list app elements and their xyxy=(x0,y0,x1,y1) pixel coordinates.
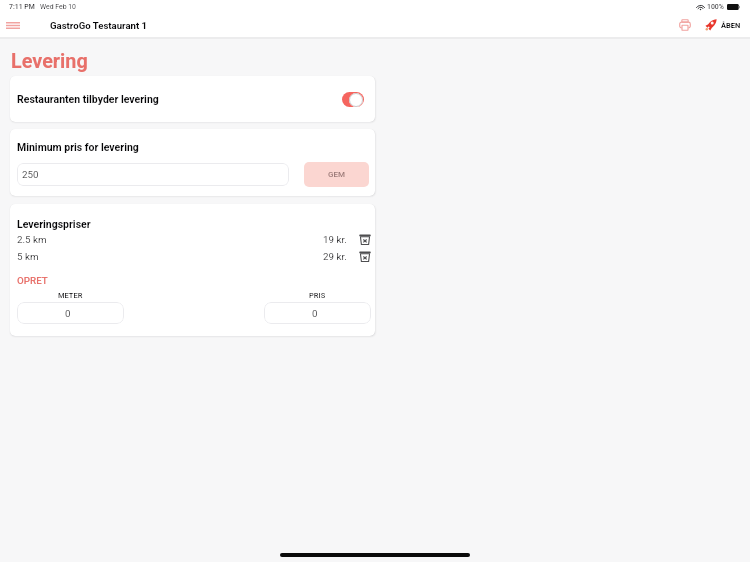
button[interactable]: OPRET xyxy=(17,275,48,286)
staticText: Leveringspriser xyxy=(17,218,91,230)
staticText: 5 km xyxy=(17,251,39,262)
staticText: Levering xyxy=(11,50,88,73)
button[interactable]: Delete xyxy=(358,250,371,263)
staticText: 0 xyxy=(312,308,318,319)
staticText: METER xyxy=(58,291,83,300)
staticText: GEM xyxy=(328,170,345,179)
button[interactable]: 250 xyxy=(17,163,289,186)
button[interactable]: 0 xyxy=(17,302,124,324)
staticText: 19 kr. xyxy=(323,234,347,245)
button[interactable]: 0 xyxy=(264,302,371,324)
staticText: 7:11 PM xyxy=(9,3,35,11)
staticText: 100% xyxy=(707,3,724,11)
staticText: 250 xyxy=(22,169,39,180)
button[interactable]: Open navigation menu xyxy=(3,15,23,35)
button[interactable]: Delete xyxy=(358,233,371,246)
staticText: 2.5 km xyxy=(17,234,47,245)
staticText: Minimum pris for levering xyxy=(17,141,139,153)
button[interactable]: Print xyxy=(677,17,693,33)
staticText: 29 kr. xyxy=(323,251,347,262)
staticText: 0 xyxy=(65,308,71,319)
staticText: PRIS xyxy=(309,291,326,300)
staticText: Restauranten tilbyder levering xyxy=(17,93,159,105)
staticText: Wed Feb 10 xyxy=(40,3,76,11)
staticText: ÅBEN xyxy=(721,21,741,30)
button[interactable]: GEM xyxy=(304,162,369,187)
staticText: GastroGo Testaurant 1 xyxy=(50,20,148,31)
button[interactable]: Toggle delivery xyxy=(342,92,364,107)
button[interactable]: ÅBEN xyxy=(705,19,741,31)
